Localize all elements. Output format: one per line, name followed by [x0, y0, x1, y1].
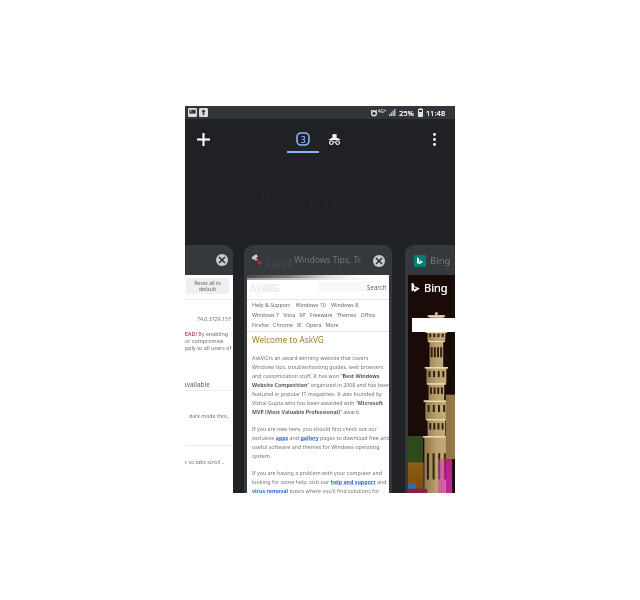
button[interactable]: Tabs, 3 open [286, 121, 320, 157]
staticText: EAD! By enabling or compromise pply to a… [185, 330, 232, 351]
staticText: Search [367, 283, 387, 291]
button[interactable]: Reset all to default [186, 278, 229, 294]
staticText: EAD! [185, 330, 197, 337]
button[interactable]: Close tab [216, 254, 228, 266]
staticText: AskVG [265, 258, 294, 270]
staticText: AskVG is an award winning website that c… [252, 354, 392, 416]
staticText: Help & Support Windows 10 Windows 8 [252, 301, 359, 308]
button[interactable]: Bing [405, 245, 455, 493]
staticText: 25% [399, 108, 414, 118]
staticText: 74.0.3729.157 [197, 315, 231, 322]
staticText: Windows 7 Vista XP Freeware Themes Offic… [252, 311, 376, 318]
button[interactable]: More options [416, 121, 452, 157]
button[interactable]: New tab [185, 121, 222, 157]
button[interactable]: Incognito tabs [318, 121, 351, 157]
staticText: Welcome to AskVG [252, 334, 324, 345]
staticText: Bing [424, 280, 448, 295]
staticText: Firefox Chrome IE Opera More [252, 321, 339, 328]
staticText: - Windows Tips, Tr [287, 254, 371, 266]
staticText: 11:48 [426, 108, 446, 118]
button[interactable]: Close tab [373, 255, 385, 267]
staticText: dark mode thro.. [189, 412, 230, 419]
staticText: Reset all to default [194, 279, 221, 293]
button[interactable]: Close tab [185, 245, 233, 493]
staticText: VG [264, 281, 278, 295]
button[interactable]: AskVG [244, 245, 392, 493]
staticText: AskVG [264, 254, 290, 266]
staticText: available [185, 380, 210, 389]
staticText: 3 [301, 134, 306, 145]
staticText: Bing [430, 254, 451, 267]
staticText: If you are having a problem with your co… [252, 469, 392, 493]
staticText: r so tabs scroll .. [185, 458, 225, 465]
staticText: AskVG [250, 281, 280, 295]
staticText: If you are new here, you should first ch… [252, 425, 392, 460]
staticText: 4G+ [378, 108, 387, 114]
